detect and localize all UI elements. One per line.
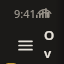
- staticText: 9:41: [14, 6, 36, 21]
- button[interactable]: Menu: [10, 30, 40, 60]
- staticText: Overview: [44, 26, 54, 64]
